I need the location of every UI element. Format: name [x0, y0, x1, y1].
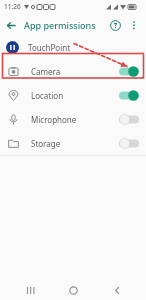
- button[interactable]: Camera: [0, 59, 146, 83]
- button[interactable]: Back: [0, 14, 22, 36]
- button[interactable]: Back: [103, 280, 131, 300]
- button[interactable]: Microphone: [0, 107, 146, 131]
- staticText: 11:26: [4, 2, 21, 11]
- button[interactable]: Help: [105, 15, 125, 35]
- staticText: Microphone: [31, 114, 77, 125]
- button[interactable]: Denied: [119, 114, 139, 125]
- button[interactable]: Denied: [119, 138, 139, 149]
- button[interactable]: Location: [0, 83, 146, 107]
- button[interactable]: Recents: [16, 280, 44, 300]
- button[interactable]: TouchPoint: [0, 36, 146, 59]
- button[interactable]: More options: [125, 16, 143, 34]
- button[interactable]: Home: [59, 280, 87, 300]
- button[interactable]: Allowed: [119, 90, 139, 101]
- staticText: Camera: [31, 66, 61, 77]
- staticText: Location: [31, 90, 64, 101]
- staticText: TouchPoint: [28, 42, 71, 53]
- staticText: Storage: [31, 138, 61, 149]
- button[interactable]: Storage: [0, 131, 146, 155]
- button[interactable]: Allowed: [119, 66, 139, 77]
- staticText: App permissions: [24, 19, 96, 31]
